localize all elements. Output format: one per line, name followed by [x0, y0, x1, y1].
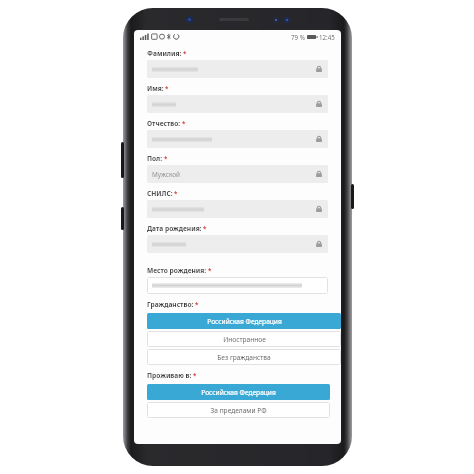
button[interactable]: Российская Федерация: [147, 313, 341, 329]
button[interactable]: Фамилия, заблокировано: [147, 60, 328, 78]
staticText: *: [174, 189, 178, 197]
staticText: *: [182, 119, 186, 127]
staticText: *: [195, 300, 199, 308]
staticText: *: [193, 371, 197, 379]
staticText: 79 %: [291, 33, 305, 41]
staticText: Пол:: [147, 154, 163, 163]
staticText: Фамилия:: [147, 49, 182, 58]
staticText: Мужской: [152, 170, 180, 179]
staticText: Дата рождения:: [147, 224, 202, 233]
other: Power button: [351, 184, 354, 209]
other: Volume buttons: [121, 142, 124, 178]
button[interactable]: СНИЛС, заблокировано: [147, 200, 328, 218]
staticText: *: [183, 49, 187, 57]
button[interactable]: Имя, заблокировано: [147, 95, 328, 113]
staticText: Имя:: [147, 84, 164, 93]
staticText: 12:45: [319, 33, 335, 41]
staticText: *: [208, 266, 212, 274]
other: Bixby button: [121, 207, 124, 230]
staticText: *: [203, 224, 207, 232]
button[interactable]: Пол, заблокировано: [147, 165, 328, 183]
button[interactable]: Отчество, заблокировано: [147, 130, 328, 148]
staticText: *: [165, 84, 169, 92]
button[interactable]: Без гражданства: [147, 349, 341, 365]
staticText: Отчество:: [147, 119, 181, 128]
staticText: За пределами РФ: [210, 406, 267, 415]
button[interactable]: Дата рождения, заблокировано: [147, 235, 328, 253]
staticText: СНИЛС:: [147, 189, 173, 198]
staticText: Место рождения:: [147, 266, 207, 275]
staticText: Иностранное: [223, 335, 266, 344]
button[interactable]: Российская Федерация: [147, 384, 330, 400]
staticText: Российская Федерация: [201, 388, 276, 397]
staticText: *: [164, 154, 168, 162]
button[interactable]: Место рождения: [147, 277, 328, 294]
staticText: Проживаю в:: [147, 371, 192, 380]
button[interactable]: За пределами РФ: [147, 402, 330, 418]
staticText: Гражданство:: [147, 300, 194, 309]
staticText: Российская Федерация: [207, 317, 282, 326]
button[interactable]: Иностранное: [147, 331, 341, 347]
staticText: Без гражданства: [217, 353, 271, 362]
